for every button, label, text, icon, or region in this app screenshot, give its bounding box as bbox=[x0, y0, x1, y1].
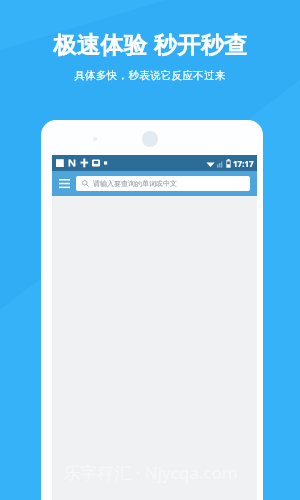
staticText: 极速体验 秒开秒查 bbox=[53, 28, 248, 59]
staticText: 17:17 bbox=[233, 158, 254, 169]
button[interactable]: 请输入要查询的单词或中文 bbox=[76, 176, 250, 191]
button[interactable]: Menu bbox=[52, 171, 76, 196]
staticText: 具体多快，秒表说它反应不过来 bbox=[74, 69, 226, 82]
staticText: 请输入要查询的单词或中文 bbox=[93, 179, 177, 188]
